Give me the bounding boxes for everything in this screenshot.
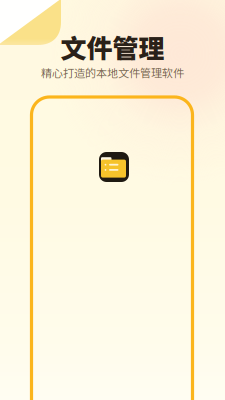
staticText: 文件管理	[60, 28, 164, 66]
staticText: 精心打造的本地文件管理软件	[41, 64, 184, 80]
